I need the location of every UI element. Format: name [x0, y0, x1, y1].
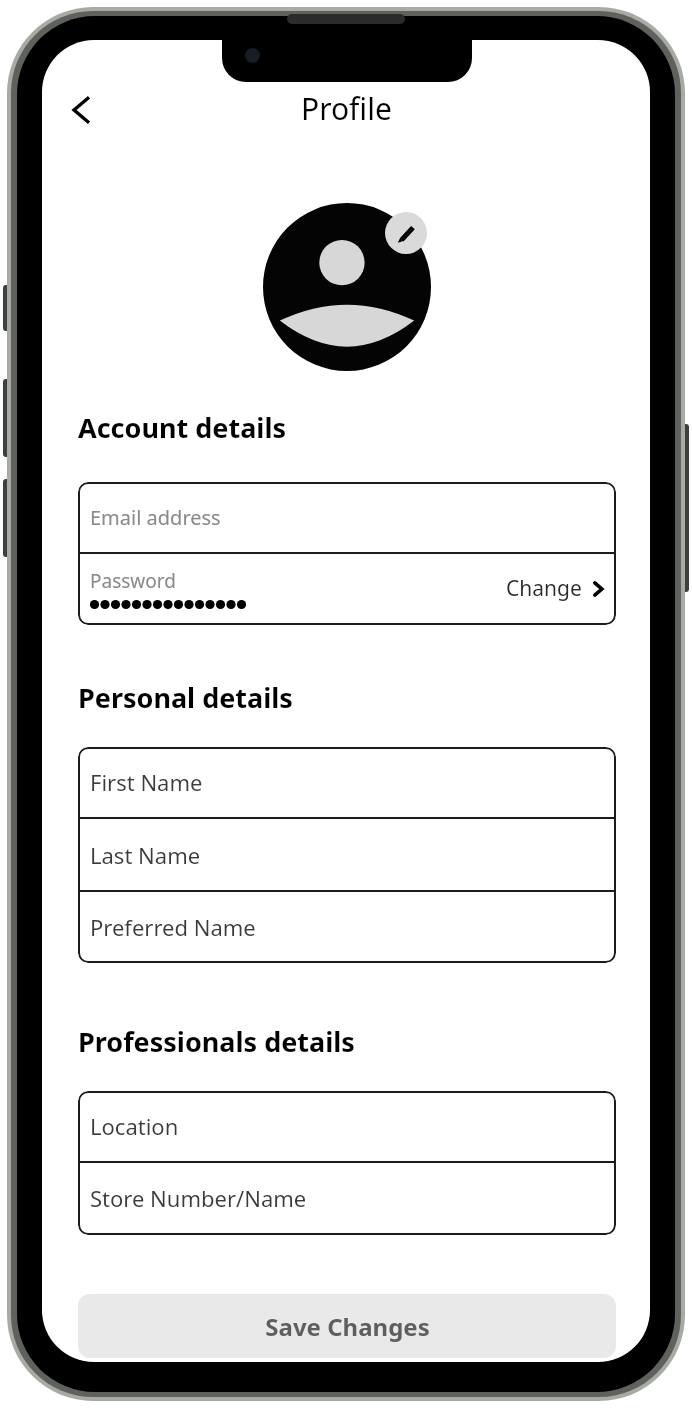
staticText: Last Name — [90, 840, 201, 870]
button[interactable]: Store Number/Name — [78, 1163, 616, 1233]
button[interactable]: Password — [78, 554, 616, 623]
staticText: Location — [90, 1111, 179, 1141]
button[interactable]: Back — [54, 82, 110, 138]
staticText: Save Changes — [265, 1310, 430, 1343]
button[interactable]: Save Changes — [78, 1294, 616, 1358]
button[interactable]: Change — [506, 574, 606, 603]
staticText: Professionals details — [78, 1023, 355, 1060]
button[interactable]: Location — [78, 1091, 616, 1161]
staticText: Change — [506, 574, 582, 603]
staticText: Store Number/Name — [90, 1183, 307, 1213]
staticText: First Name — [90, 767, 203, 797]
button[interactable]: Preferred Name — [78, 892, 616, 962]
staticText: Account details — [78, 409, 287, 446]
button[interactable]: Email address — [78, 482, 616, 552]
button[interactable]: Edit photo — [385, 212, 427, 254]
button[interactable]: Last Name — [78, 819, 616, 890]
staticText: Profile — [301, 88, 392, 129]
staticText: Personal details — [78, 679, 293, 716]
staticText: Preferred Name — [90, 912, 256, 942]
staticText: Password — [90, 568, 176, 594]
button[interactable]: Profile photo — [263, 203, 431, 371]
staticText: Email address — [90, 504, 221, 531]
button[interactable]: First Name — [78, 747, 616, 817]
